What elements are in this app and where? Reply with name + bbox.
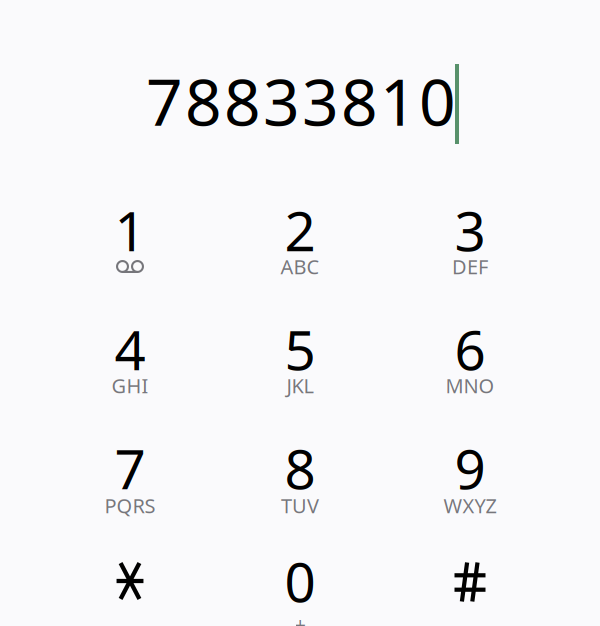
staticText: JKL	[286, 372, 313, 399]
button[interactable]: 5	[225, 308, 375, 420]
button[interactable]: 2	[225, 189, 375, 301]
staticText: 4	[114, 313, 145, 385]
staticText: MNO	[445, 372, 494, 399]
staticText: 7	[114, 432, 145, 504]
button[interactable]: 7	[55, 427, 205, 539]
staticText: 78833810	[146, 58, 456, 143]
button[interactable]: 4	[55, 308, 205, 420]
staticText: 6	[454, 313, 485, 385]
staticText: 9	[454, 432, 485, 504]
staticText: 5	[284, 313, 315, 385]
staticText: WXYZ	[443, 492, 496, 519]
staticText: +	[294, 611, 305, 626]
button[interactable]: 8	[225, 427, 375, 539]
staticText: TUV	[281, 492, 319, 519]
button[interactable]: 6	[395, 308, 545, 420]
staticText: PQRS	[104, 492, 155, 519]
staticText: GHI	[111, 372, 148, 399]
staticText: DEF	[452, 253, 488, 280]
button[interactable]: Star	[55, 540, 205, 626]
staticText: 2	[284, 194, 315, 266]
staticText: 1	[114, 194, 145, 266]
button[interactable]: 1	[55, 189, 205, 301]
staticText: 8	[284, 432, 315, 504]
staticText: ABC	[280, 253, 319, 280]
button[interactable]: 0	[225, 540, 375, 626]
button[interactable]: Pound	[395, 540, 545, 626]
button[interactable]: 3	[395, 189, 545, 301]
staticText: 0	[284, 545, 315, 617]
button[interactable]: 9	[395, 427, 545, 539]
staticText: 3	[454, 194, 485, 266]
